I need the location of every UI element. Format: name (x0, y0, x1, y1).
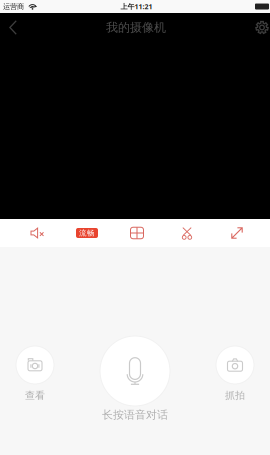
button[interactable]: 设置 (243, 14, 270, 41)
staticText: 我的摄像机 (106, 20, 166, 35)
staticText: 抓拍 (225, 389, 245, 402)
staticText: 长按语音对话 (102, 408, 168, 422)
button[interactable]: 静音 (17, 219, 57, 247)
button[interactable]: 长按语音对话 (100, 336, 170, 422)
staticText: 运营商 (3, 2, 24, 11)
staticText: 流畅 (79, 228, 95, 238)
staticText: 查看 (25, 389, 45, 402)
button[interactable]: 流畅 (67, 219, 107, 247)
button[interactable]: 全屏 (217, 219, 257, 247)
button[interactable]: 方向控制 (117, 219, 157, 247)
button[interactable]: 查看 (16, 346, 54, 402)
button[interactable]: 抓拍 (216, 346, 254, 402)
staticText: 上午11:21 (120, 2, 152, 11)
button[interactable]: 剪辑 (167, 219, 207, 247)
button[interactable]: 返回 (0, 14, 29, 41)
